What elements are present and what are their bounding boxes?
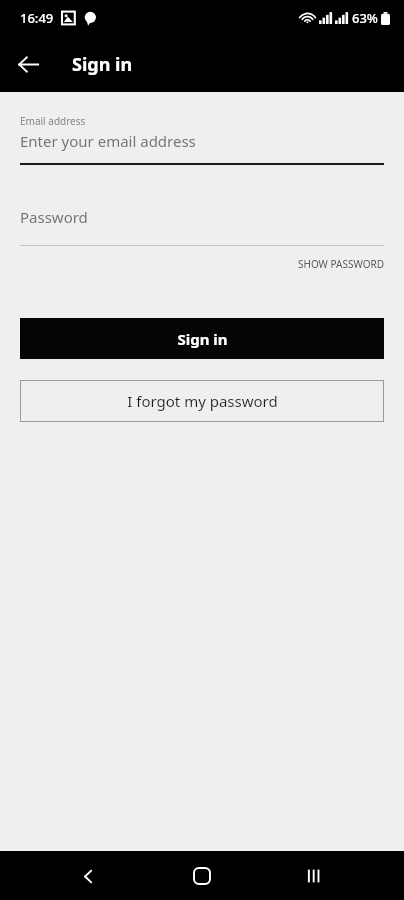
button[interactable]: Back [8, 44, 48, 84]
button[interactable]: I forgot my password [20, 380, 384, 422]
staticText: Sign in [72, 52, 133, 77]
staticText: 16:49 [20, 9, 54, 27]
staticText: Password [20, 207, 88, 227]
staticText: Enter your email address [20, 131, 196, 151]
staticText: Sign in [177, 329, 228, 349]
button[interactable]: Home [182, 856, 222, 896]
button[interactable]: Sign in [20, 318, 384, 359]
staticText: SHOW PASSWORD [298, 257, 384, 271]
button[interactable]: Email address [20, 114, 384, 165]
button[interactable]: SHOW PASSWORD [298, 254, 384, 274]
staticText: I forgot my password [127, 391, 278, 411]
button[interactable]: Password [20, 207, 384, 246]
button[interactable]: Back [68, 856, 108, 896]
staticText: 63% [352, 9, 378, 27]
button[interactable]: Recent apps [294, 856, 334, 896]
staticText: Email address [20, 114, 86, 128]
